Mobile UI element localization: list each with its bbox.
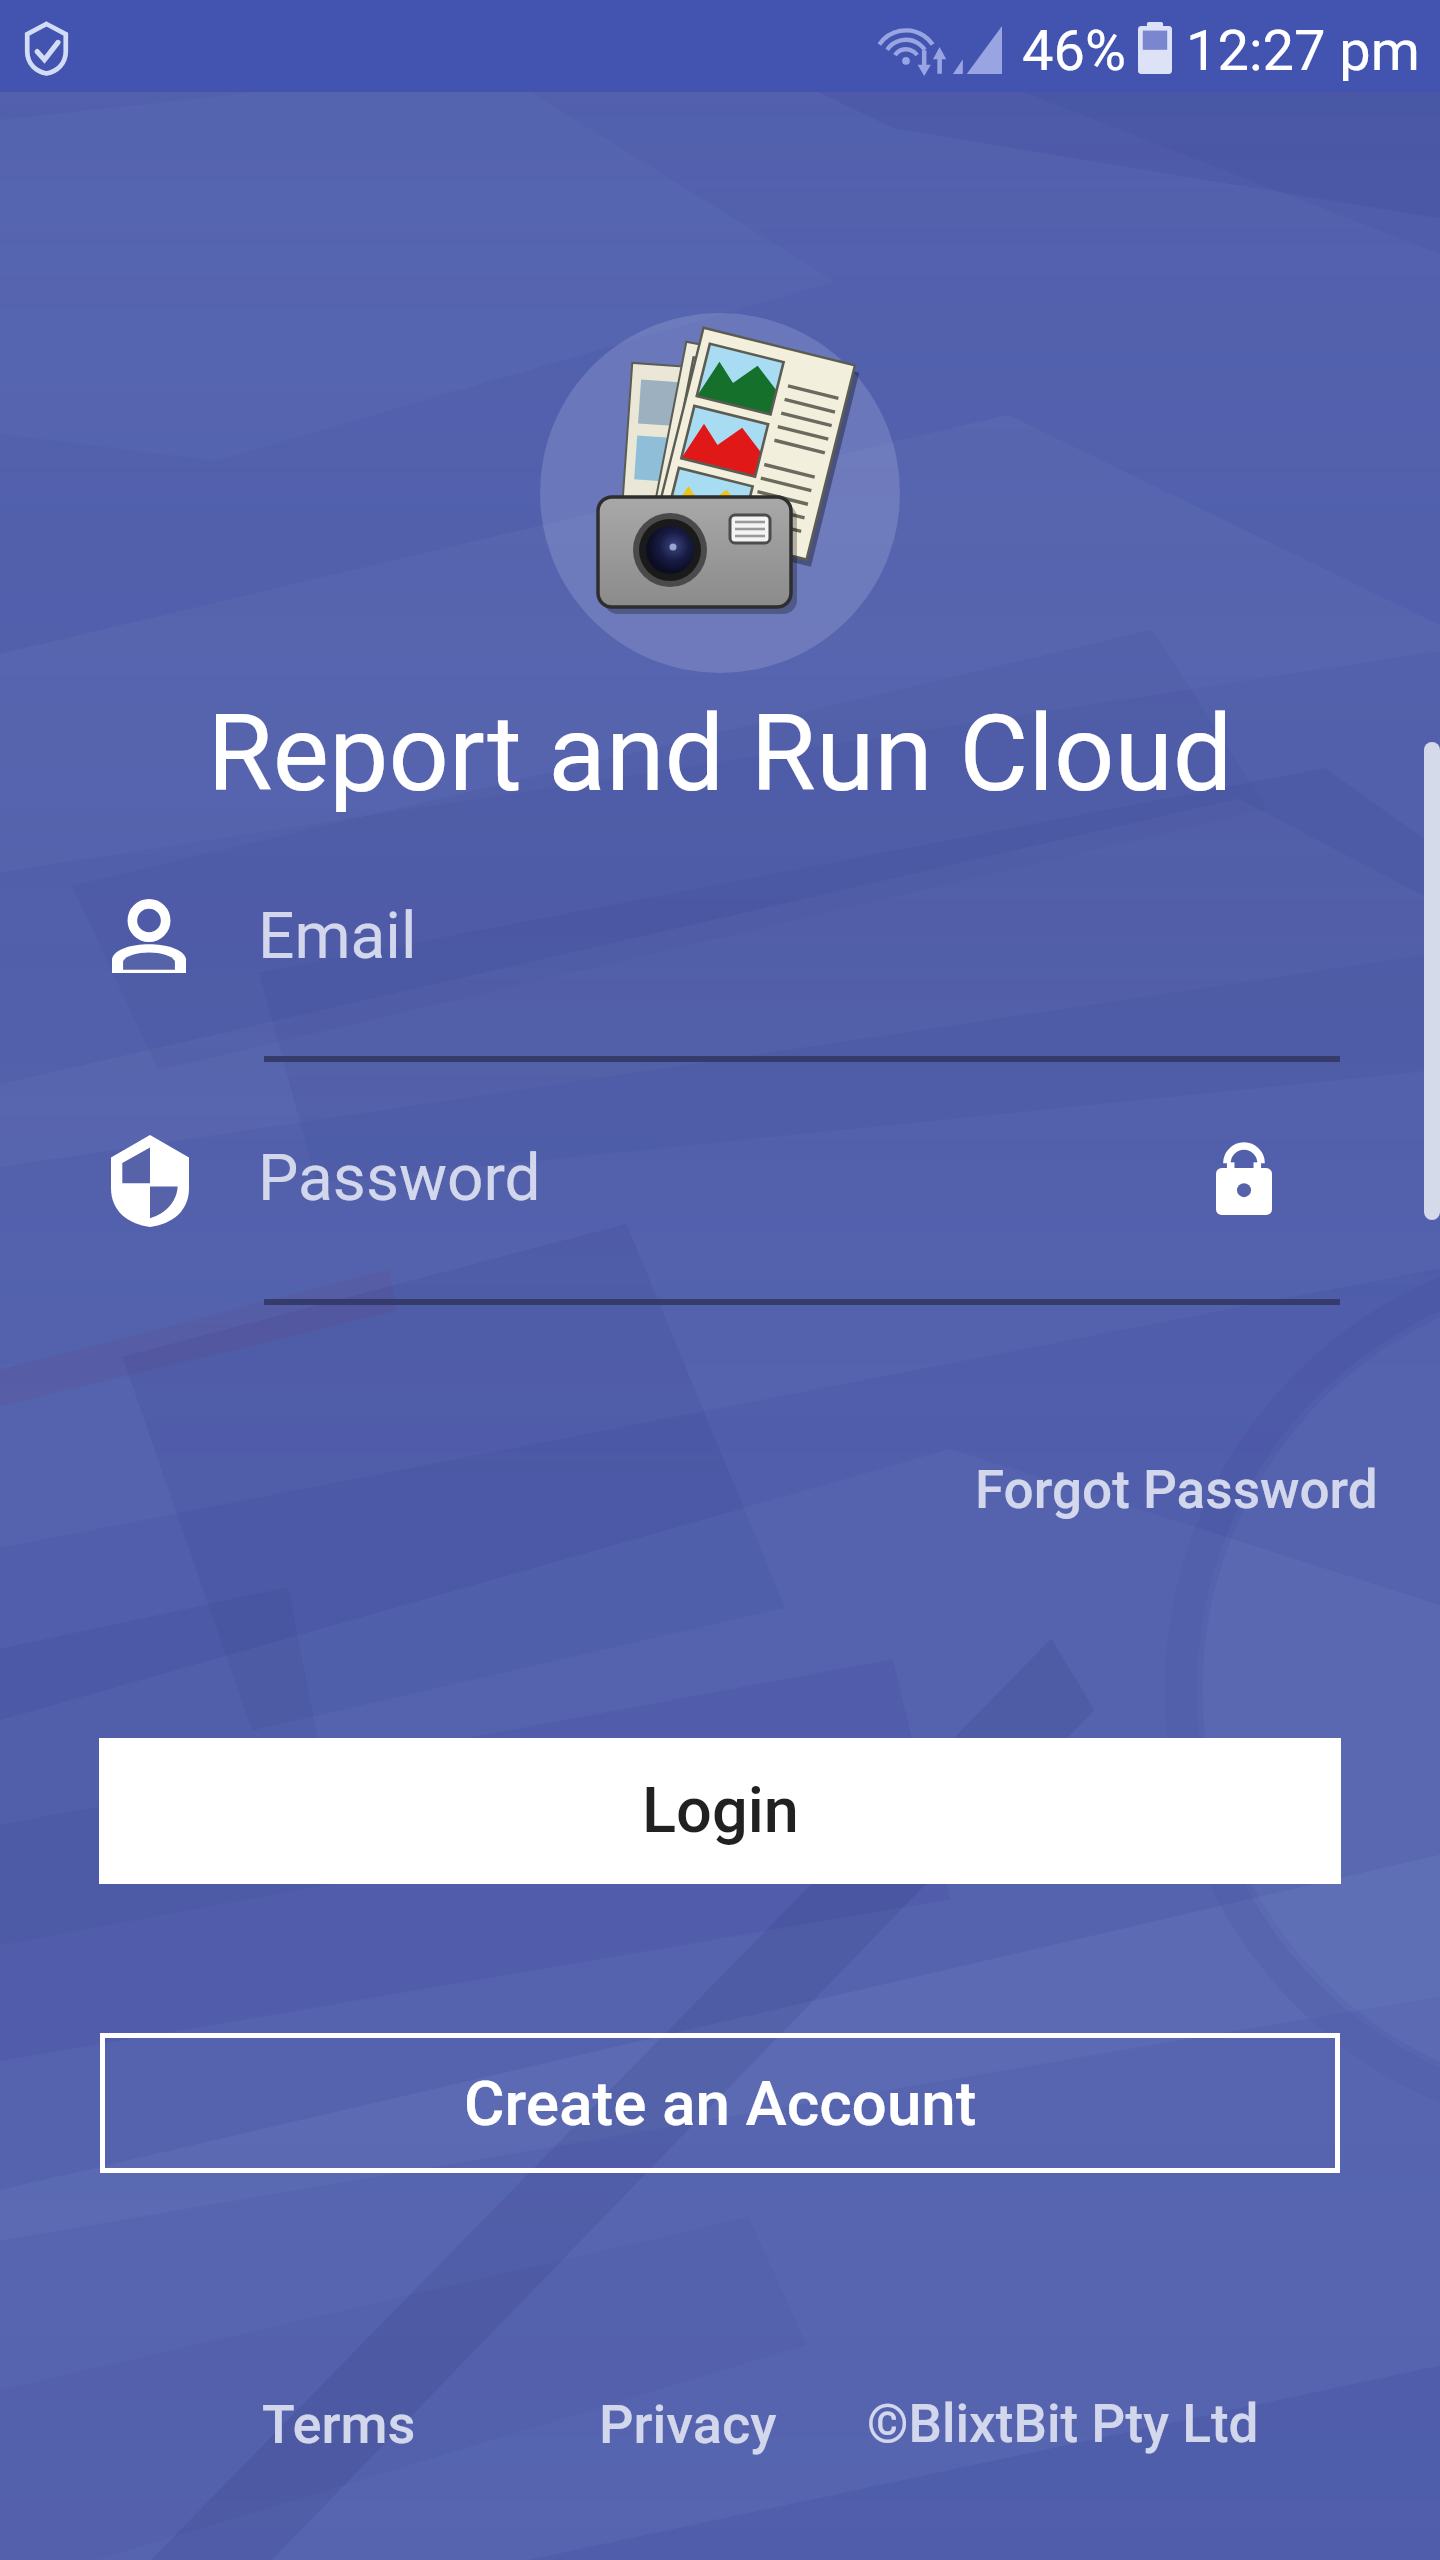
staticText: Report and Run Cloud bbox=[0, 692, 1440, 816]
staticText: 46% bbox=[1022, 18, 1126, 84]
button[interactable]: Show password bbox=[1196, 1125, 1292, 1235]
button[interactable]: Login bbox=[99, 1738, 1341, 1884]
button[interactable]: Forgot Password bbox=[949, 1445, 1404, 1535]
staticText: Login bbox=[642, 1774, 799, 1848]
staticText: Create an Account bbox=[464, 2067, 977, 2140]
staticText: Terms bbox=[262, 2393, 416, 2456]
staticText: Password bbox=[258, 1141, 541, 1216]
button[interactable]: Privacy bbox=[577, 2383, 799, 2466]
button[interactable]: Email bbox=[100, 880, 1350, 1065]
button[interactable]: Password bbox=[100, 1122, 1200, 1307]
staticText: 12:27 pm bbox=[1186, 18, 1420, 84]
button[interactable]: Terms bbox=[240, 2383, 438, 2466]
staticText: Email bbox=[258, 899, 417, 974]
staticText: ©BlixtBit Pty Ltd bbox=[867, 2393, 1259, 2455]
staticText: Privacy bbox=[599, 2393, 777, 2456]
staticText: Forgot Password bbox=[975, 1459, 1378, 1521]
button[interactable]: Create an Account bbox=[100, 2033, 1340, 2173]
